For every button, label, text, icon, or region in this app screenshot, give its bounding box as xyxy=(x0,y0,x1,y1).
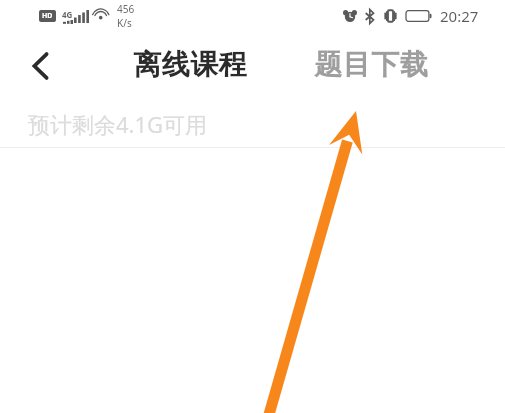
staticText: K/s xyxy=(117,16,132,30)
staticText: 预计剩余4.1G可用 xyxy=(28,109,208,139)
staticText: 456 xyxy=(117,2,135,16)
button[interactable]: 题目下载 xyxy=(310,42,432,89)
button[interactable]: Back xyxy=(16,42,64,90)
staticText: 题目下载 xyxy=(314,47,428,82)
staticText: 20:27 xyxy=(440,6,479,26)
staticText: HD xyxy=(42,11,53,21)
staticText: 4G xyxy=(62,9,73,20)
staticText: 离线课程 xyxy=(133,47,247,82)
